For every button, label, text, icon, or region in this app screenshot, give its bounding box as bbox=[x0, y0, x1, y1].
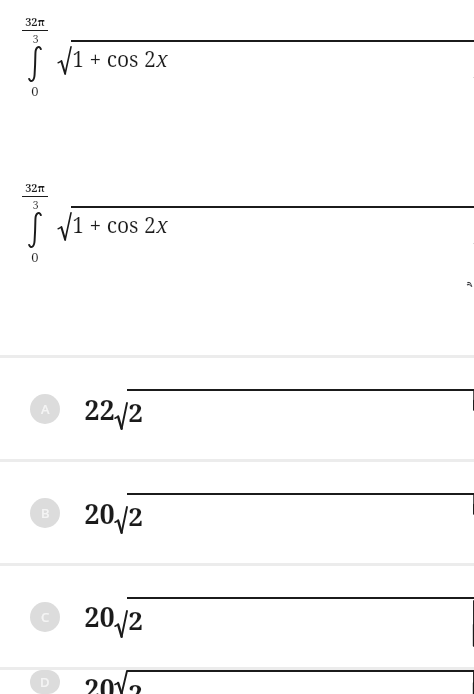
staticText: C bbox=[41, 608, 50, 626]
staticText: 3 bbox=[32, 197, 39, 212]
staticText: 22 bbox=[84, 391, 115, 428]
button[interactable]: A bbox=[0, 358, 474, 459]
button[interactable]: C bbox=[0, 566, 474, 667]
staticText: 32π bbox=[25, 180, 45, 195]
staticText: 20 bbox=[84, 670, 115, 694]
staticText: A bbox=[41, 400, 50, 418]
staticText: 32π bbox=[25, 14, 45, 29]
button[interactable]: B bbox=[0, 462, 474, 563]
staticText: 2 bbox=[128, 498, 143, 533]
staticText: 1 + cos 2 bbox=[72, 211, 156, 240]
staticText: 2 bbox=[128, 394, 143, 429]
staticText: B bbox=[41, 504, 50, 522]
staticText: D bbox=[40, 673, 50, 691]
staticText: 3 bbox=[32, 31, 39, 46]
staticText: 1 + cos 2 bbox=[72, 45, 156, 74]
staticText: 2 bbox=[128, 675, 143, 694]
staticText: 20 bbox=[84, 598, 115, 635]
staticText: 0 bbox=[31, 248, 39, 266]
staticText: x bbox=[156, 211, 168, 240]
staticText: 0 bbox=[31, 82, 39, 100]
staticText: x bbox=[156, 45, 168, 74]
button[interactable]: D bbox=[0, 670, 474, 694]
staticText: 2 bbox=[128, 602, 143, 637]
staticText: 20 bbox=[84, 495, 115, 532]
